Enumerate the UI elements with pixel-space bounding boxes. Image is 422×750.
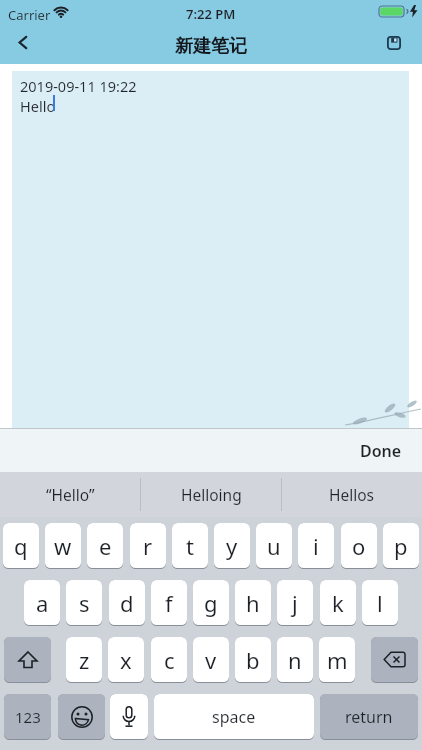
staticText: s [79,588,90,618]
staticText: h [246,588,260,618]
button[interactable]: d [109,580,145,626]
staticText: 123 [15,707,41,727]
staticText: 新建笔记 [175,35,247,58]
button[interactable]: v [193,637,229,683]
staticText: t [186,531,194,561]
button[interactable]: g [193,580,229,626]
button[interactable]: x [108,637,144,683]
button[interactable]: q [3,523,39,569]
staticText: j [292,588,298,618]
button[interactable]: 123 [4,694,51,740]
button[interactable]: Done [360,440,402,462]
staticText: Hellos [329,484,375,505]
staticText: space [212,706,256,728]
staticText: m [327,645,348,675]
staticText: p [394,531,408,561]
button[interactable]: p [383,523,419,569]
staticText: 7:22 PM [186,5,236,23]
staticText: l [377,588,383,618]
button[interactable]: a [24,580,60,626]
staticText: o [352,531,366,561]
button[interactable]: h [235,580,271,626]
button[interactable]: space [154,694,314,740]
staticText: x [120,645,132,675]
button[interactable]: k [320,580,356,626]
staticText: q [14,531,28,561]
button[interactable]: u [256,523,292,569]
button[interactable] [371,637,418,683]
staticText: b [246,645,260,675]
button[interactable] [18,36,28,49]
button[interactable]: j [277,580,313,626]
staticText: g [204,588,218,618]
staticText: 2019-09-11 19:22 [20,76,137,96]
button[interactable]: b [235,637,271,683]
button[interactable] [58,694,105,740]
staticText: r [143,531,153,561]
staticText: Helloing [181,484,242,505]
button[interactable]: f [151,580,187,626]
staticText: f [165,588,173,618]
staticText: w [54,531,72,561]
button[interactable]: e [87,523,123,569]
staticText: e [99,531,112,561]
button[interactable] [387,36,401,50]
button[interactable]: z [66,637,102,683]
button[interactable]: y [214,523,250,569]
button[interactable]: t [172,523,208,569]
button[interactable]: r [130,523,166,569]
button[interactable]: return [320,694,418,740]
staticText: i [313,531,319,561]
staticText: “Hello” [46,484,95,505]
staticText: return [345,706,393,728]
button[interactable]: n [277,637,313,683]
button[interactable] [4,637,51,683]
staticText: a [36,588,49,618]
staticText: k [332,588,344,618]
staticText: y [226,531,238,561]
staticText: Done [360,440,402,462]
button[interactable]: c [151,637,187,683]
staticText: v [205,645,217,675]
button[interactable]: o [341,523,377,569]
staticText: u [267,531,281,561]
staticText: n [288,645,302,675]
button[interactable]: m [319,637,355,683]
button[interactable] [110,694,148,740]
staticText: d [120,588,134,618]
button[interactable]: “Hello” [0,472,140,517]
button[interactable]: Helloing [141,472,281,517]
staticText: c [164,645,175,675]
staticText: z [79,645,90,675]
button[interactable]: l [362,580,398,626]
staticText: Hello [20,96,56,116]
button[interactable]: w [45,523,81,569]
button[interactable]: i [298,523,334,569]
staticText: Carrier [8,6,51,24]
button[interactable]: s [66,580,102,626]
button[interactable]: Hellos [282,472,422,517]
